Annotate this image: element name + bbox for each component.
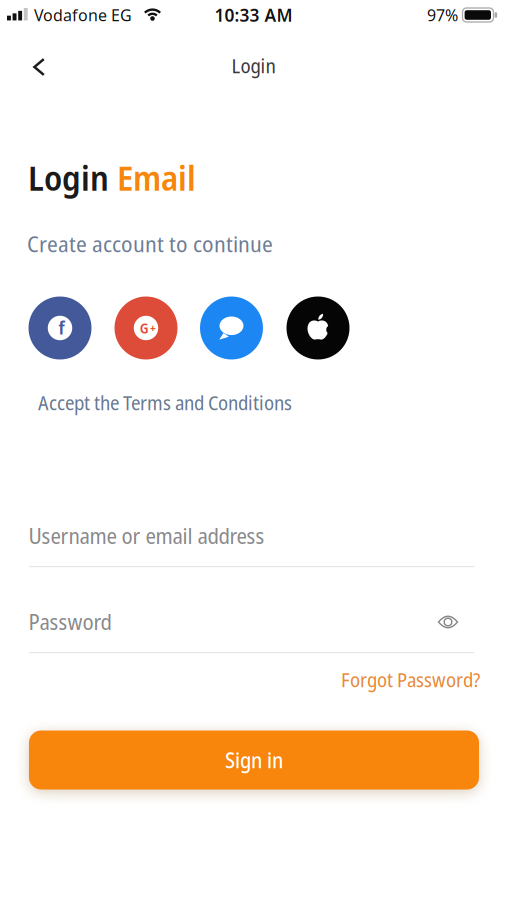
button[interactable]: Accept the Terms and Conditions	[38, 389, 292, 416]
button[interactable]: Sign in with Facebook	[28, 296, 91, 359]
button[interactable]: Forgot Password?	[341, 666, 480, 693]
button[interactable]: Sign in with Apple	[286, 296, 349, 359]
staticText: Create account to continue	[27, 228, 273, 259]
button[interactable]: Username or email address	[0, 505, 507, 567]
button[interactable]: Back	[17, 47, 61, 87]
staticText: Vodafone EG	[34, 4, 132, 26]
button[interactable]: Show password	[437, 614, 458, 630]
staticText: Login	[28, 154, 109, 201]
button[interactable]: Password	[0, 591, 507, 653]
staticText: f	[58, 315, 64, 340]
staticText: G	[140, 318, 149, 338]
staticText: Forgot Password?	[341, 666, 480, 693]
staticText: 10:33 AM	[214, 3, 292, 26]
staticText: Login	[231, 52, 275, 79]
staticText: 97%	[427, 4, 458, 26]
staticText: +	[150, 320, 156, 335]
button[interactable]: Sign in with Messenger	[200, 296, 263, 359]
staticText: Sign in	[225, 745, 283, 775]
button[interactable]: Sign in with Google	[114, 296, 177, 359]
staticText: Username or email address	[28, 521, 264, 550]
staticText: Password	[28, 607, 111, 636]
staticText: Email	[117, 154, 196, 201]
staticText: Accept the Terms and Conditions	[38, 389, 292, 416]
button[interactable]: Sign in	[29, 730, 479, 789]
